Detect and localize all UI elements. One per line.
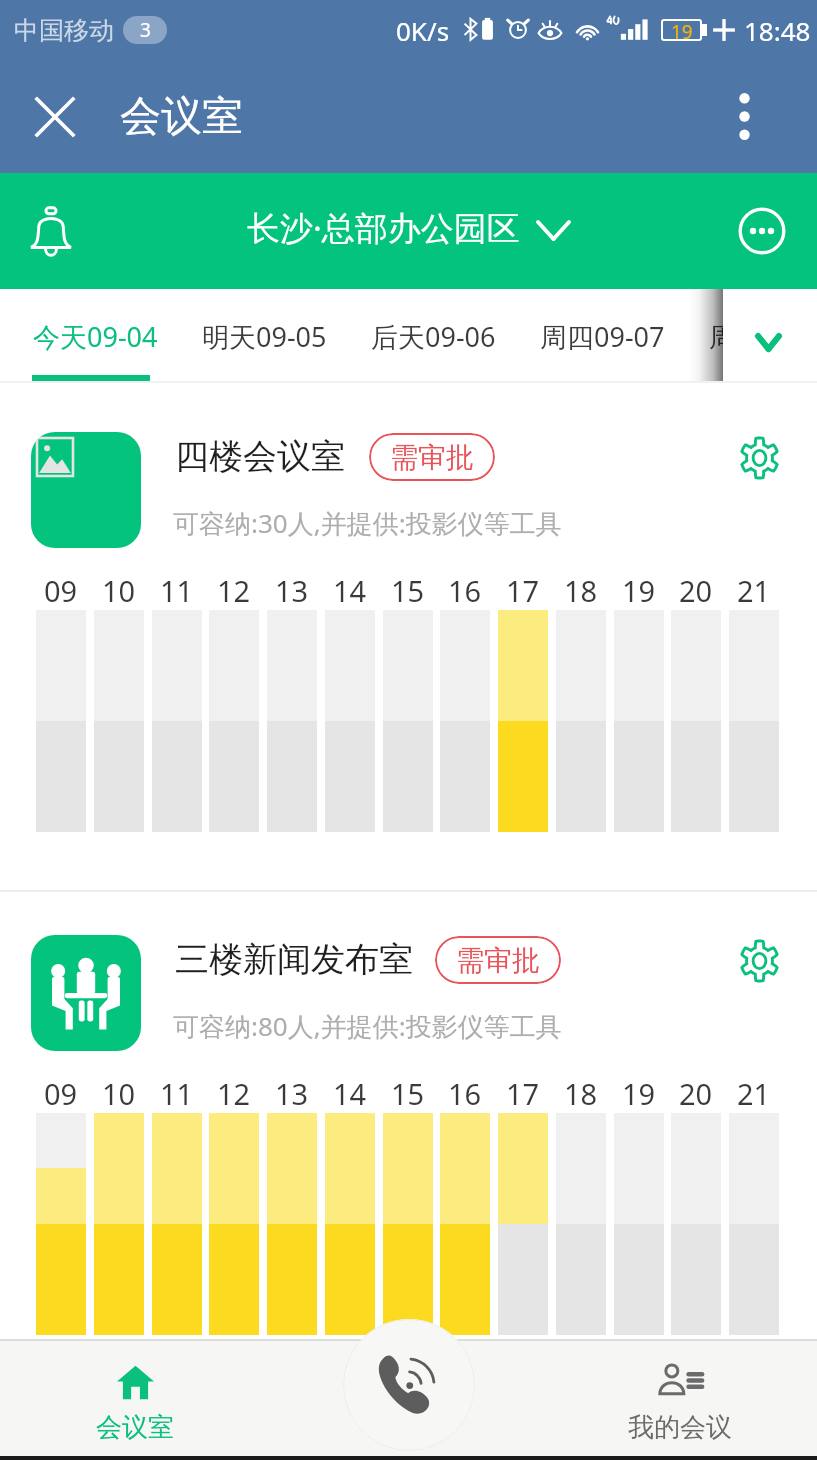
button[interactable]: More [727, 196, 797, 266]
staticText: 18:48 [744, 13, 811, 48]
staticText: 0K/s [396, 13, 450, 48]
staticText: 周五09-08 [709, 318, 817, 355]
staticText: 19 [622, 1074, 656, 1113]
staticText: 长沙·总部办公园区 [247, 205, 520, 250]
staticText: 11 [160, 1074, 194, 1113]
staticText: 15 [391, 571, 425, 610]
staticText: 10 [102, 1074, 136, 1113]
staticText: 3 [140, 17, 151, 43]
button[interactable]: 明天09-05 [202, 289, 371, 383]
button[interactable]: 四楼会议室 [0, 383, 817, 890]
staticText: 15 [391, 1074, 425, 1113]
button[interactable]: 我的会议 [605, 1339, 755, 1460]
staticText: 会议室 [120, 91, 243, 143]
staticText: 16 [448, 1074, 482, 1113]
staticText: 09 [44, 1074, 78, 1113]
staticText: 20 [679, 1074, 713, 1113]
staticText: 三楼新闻发布室 [175, 938, 413, 981]
staticText: 明天09-05 [202, 318, 327, 355]
button[interactable]: Close [19, 60, 91, 173]
staticText: 19 [671, 19, 693, 41]
button[interactable]: 长沙·总部办公园区 [247, 205, 571, 250]
staticText: 17 [506, 1074, 540, 1113]
staticText: 中国移动 [14, 15, 114, 46]
staticText: 可容纳:30人,并提供:投影仪等工具 [173, 505, 562, 541]
button[interactable]: More options [700, 60, 788, 173]
staticText: 12 [217, 1074, 251, 1113]
staticText: 16 [448, 571, 482, 610]
staticText: 14 [333, 1074, 367, 1113]
button[interactable]: Call [343, 1319, 475, 1451]
staticText: 20 [679, 571, 713, 610]
button[interactable]: Expand dates [723, 289, 817, 383]
button[interactable]: Notifications [13, 193, 89, 269]
staticText: 13 [275, 1074, 309, 1113]
staticText: 我的会议 [628, 1411, 732, 1444]
staticText: 18 [564, 1074, 598, 1113]
button[interactable]: 周五09-08 [709, 289, 817, 383]
staticText: 需审批 [390, 440, 474, 475]
staticText: 21 [737, 1074, 771, 1113]
staticText: 可容纳:80人,并提供:投影仪等工具 [173, 1008, 562, 1044]
staticText: 09 [44, 571, 78, 610]
button[interactable]: Settings [716, 918, 802, 1004]
button[interactable]: 周四09-07 [540, 289, 709, 383]
staticText: 17 [506, 571, 540, 610]
staticText: 14 [333, 571, 367, 610]
staticText: 周四09-07 [540, 318, 665, 355]
button[interactable]: 今天09-04 [33, 289, 202, 383]
staticText: 18 [564, 571, 598, 610]
staticText: 11 [160, 571, 194, 610]
staticText: 会议室 [96, 1411, 174, 1444]
staticText: 后天09-06 [371, 318, 496, 355]
staticText: 需审批 [456, 943, 540, 978]
button[interactable]: Settings [716, 415, 802, 501]
button[interactable]: 三楼新闻发布室 [0, 892, 817, 1393]
staticText: 13 [275, 571, 309, 610]
staticText: 12 [217, 571, 251, 610]
staticText: 19 [622, 571, 656, 610]
button[interactable]: 会议室 [70, 1339, 200, 1460]
staticText: 10 [102, 571, 136, 610]
staticText: 四楼会议室 [175, 435, 345, 478]
button[interactable]: 后天09-06 [371, 289, 540, 383]
staticText: 21 [737, 571, 771, 610]
staticText: 今天09-04 [33, 318, 158, 355]
